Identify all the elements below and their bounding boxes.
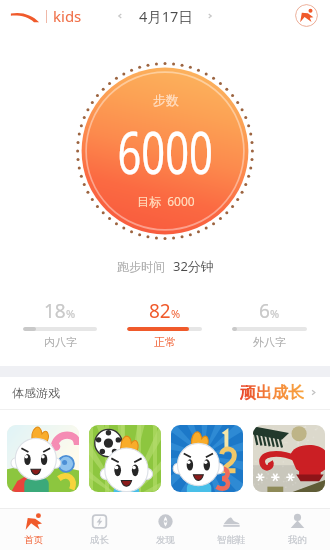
button[interactable]: 18 — [23, 298, 97, 349]
staticText: 4月17日 — [139, 6, 193, 26]
staticText: 32分钟 — [173, 257, 214, 275]
staticText: % — [66, 306, 76, 321]
staticText: 外八字 — [253, 335, 286, 349]
button[interactable]: Start run — [295, 4, 318, 27]
staticText: 顽出成长 — [240, 383, 304, 401]
button[interactable]: 82 — [127, 298, 202, 349]
button[interactable]: 智能鞋 — [198, 509, 264, 550]
staticText: 发现 — [156, 534, 175, 546]
staticText: 步数 — [153, 92, 179, 108]
staticText: 首页 — [24, 534, 43, 546]
button[interactable]: 我的 — [264, 509, 330, 550]
staticText: 跑步时间 — [117, 259, 165, 274]
staticText: 目标 6000 — [137, 193, 195, 209]
staticText: 6000 — [117, 111, 213, 191]
staticText: % — [270, 306, 280, 321]
staticText: 82 — [149, 298, 171, 324]
staticText: % — [171, 306, 181, 321]
staticText: kids — [53, 6, 82, 26]
button[interactable]: Game 0 — [7, 425, 79, 492]
button[interactable]: 6 — [232, 298, 307, 349]
button[interactable]: Game 2 — [171, 425, 243, 492]
button[interactable]: 顽出成长 — [240, 383, 318, 401]
staticText: 内八字 — [44, 335, 77, 349]
button[interactable]: Previous day — [113, 9, 127, 23]
staticText: 成长 — [90, 534, 109, 546]
staticText: 6 — [259, 298, 270, 324]
staticText: 18 — [44, 298, 66, 324]
staticText: 正常 — [154, 335, 176, 349]
button[interactable]: 首页 — [0, 509, 66, 550]
button[interactable]: Next day — [203, 9, 217, 23]
button[interactable]: 成长 — [66, 509, 132, 550]
button[interactable]: kids — [10, 6, 82, 26]
staticText: 智能鞋 — [217, 534, 246, 546]
button[interactable]: Game 1 — [89, 425, 161, 492]
staticText: 我的 — [288, 534, 307, 546]
button[interactable]: Game 3 — [253, 425, 325, 492]
staticText: 体感游戏 — [12, 385, 60, 400]
button[interactable]: 发现 — [132, 509, 198, 550]
